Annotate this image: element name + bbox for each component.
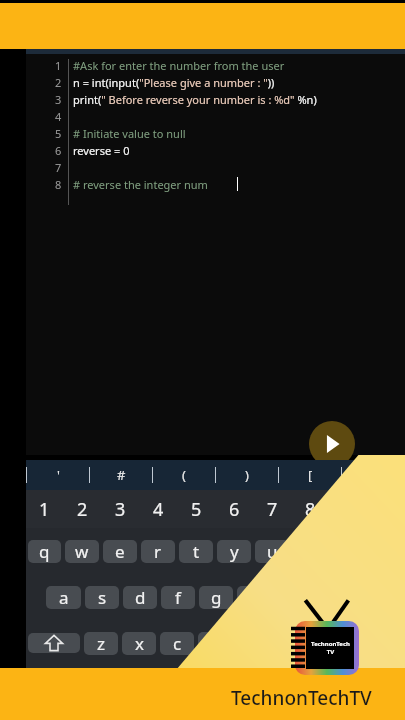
staticText: c: [173, 632, 182, 655]
button[interactable]: e: [103, 540, 137, 563]
staticText: 5: [191, 497, 202, 522]
button[interactable]: r: [141, 540, 175, 563]
staticText: z: [97, 632, 105, 655]
button[interactable]: u: [255, 540, 289, 563]
staticText: 5: [55, 126, 62, 141]
button[interactable]: d: [123, 586, 157, 609]
staticText: ': [57, 466, 60, 484]
button[interactable]: Play: [309, 421, 355, 467]
staticText: 6: [55, 143, 62, 158]
button[interactable]: 3: [101, 497, 139, 522]
staticText: n = int(input("Please give a number : ")…: [73, 75, 275, 90]
staticText: 2: [77, 497, 88, 522]
staticText: reverse = 0: [73, 143, 130, 158]
staticText: 4: [55, 109, 62, 124]
button[interactable]: 1: [26, 497, 63, 522]
staticText: r: [154, 540, 162, 563]
staticText: y: [230, 540, 239, 563]
staticText: q: [39, 540, 50, 563]
button[interactable]: 2: [63, 497, 101, 522]
staticText: a: [59, 586, 69, 609]
staticText: #: [117, 466, 126, 484]
button[interactable]: j: [275, 586, 309, 609]
staticText: u: [267, 540, 278, 563]
button[interactable]: g: [199, 586, 233, 609]
staticText: 1: [55, 58, 62, 73]
staticText: #Ask for enter the number from the user: [73, 58, 285, 73]
button[interactable]: a: [46, 586, 81, 609]
button[interactable]: 7: [253, 497, 291, 522]
button[interactable]: 5: [177, 497, 215, 522]
button[interactable]: 4: [139, 497, 177, 522]
button[interactable]: s: [85, 586, 119, 609]
staticText: 2: [55, 75, 62, 90]
staticText: d: [135, 586, 146, 609]
button[interactable]: w: [65, 540, 99, 563]
button[interactable]: x: [122, 632, 156, 655]
button[interactable]: f: [161, 586, 195, 609]
button[interactable]: ': [27, 466, 89, 484]
button[interactable]: Shift: [28, 633, 80, 653]
staticText: n: [286, 632, 297, 655]
staticText: 6: [229, 497, 240, 522]
button[interactable]: #: [90, 466, 152, 484]
staticText: s: [98, 586, 107, 609]
staticText: TechnonTech TV: [311, 640, 350, 656]
button[interactable]: c: [160, 632, 194, 655]
staticText: 7: [55, 160, 62, 175]
staticText: 1: [39, 497, 50, 522]
staticText: t: [193, 540, 200, 563]
button[interactable]: h: [237, 586, 271, 609]
staticText: x: [135, 632, 144, 655]
button[interactable]: ): [216, 466, 278, 484]
staticText: 3: [115, 497, 126, 522]
staticText: w: [75, 540, 89, 563]
button[interactable]: n: [274, 632, 308, 655]
staticText: # reverse the integer num: [73, 177, 208, 192]
button[interactable]: t: [179, 540, 213, 563]
staticText: 4: [153, 497, 164, 522]
staticText: m: [321, 632, 337, 655]
staticText: print(" Before reverse your number is : …: [73, 92, 317, 107]
staticText: 7: [267, 497, 278, 522]
staticText: [: [308, 466, 313, 484]
button[interactable]: y: [217, 540, 251, 563]
button[interactable]: k: [313, 586, 347, 609]
button[interactable]: ]: [342, 466, 404, 484]
button[interactable]: [: [279, 466, 341, 484]
staticText: 8: [305, 497, 316, 522]
button[interactable]: m: [312, 632, 346, 655]
button[interactable]: 8: [291, 497, 329, 522]
button[interactable]: q: [28, 540, 61, 563]
button[interactable]: z: [84, 632, 118, 655]
staticText: 8: [55, 177, 62, 192]
staticText: ): [245, 466, 249, 484]
staticText: e: [115, 540, 125, 563]
button[interactable]: 6: [215, 497, 253, 522]
button[interactable]: (: [153, 466, 215, 484]
staticText: g: [211, 586, 222, 609]
staticText: # Initiate value to null: [73, 126, 186, 141]
staticText: f: [175, 586, 181, 609]
button[interactable]: v: [198, 632, 232, 655]
staticText: 3: [55, 92, 62, 107]
